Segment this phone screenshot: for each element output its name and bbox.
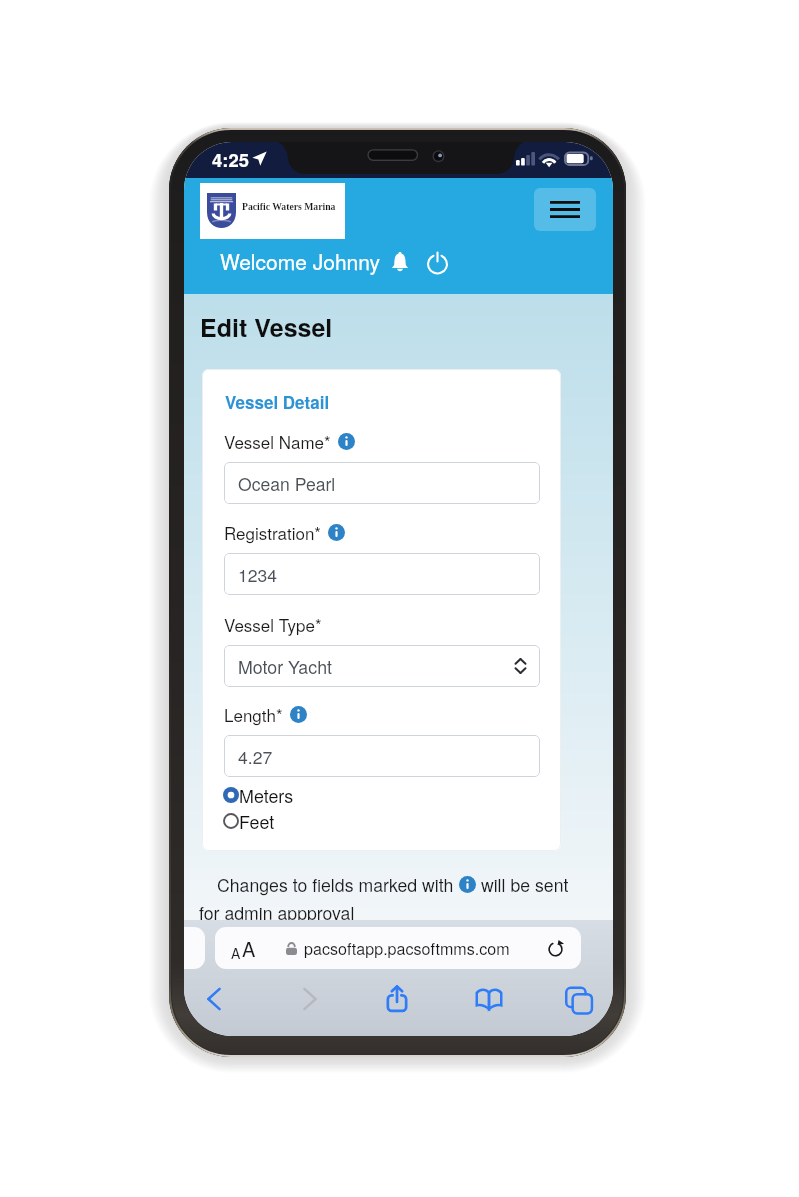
button[interactable]: Bookmarks — [470, 980, 508, 1018]
staticText: Meters — [239, 782, 294, 808]
staticText: Length* — [224, 702, 283, 726]
staticText: 4.27 — [238, 744, 273, 769]
staticText: Registration* — [224, 520, 321, 544]
staticText: A — [231, 943, 241, 963]
staticText: Edit Vessel — [200, 309, 333, 345]
button[interactable]: Motor Yacht — [224, 645, 540, 687]
staticText: Welcome Johnny — [220, 246, 380, 276]
button[interactable]: Share — [378, 980, 416, 1018]
staticText: will be sent — [476, 872, 569, 897]
staticText: Ocean Pearl — [238, 471, 336, 496]
button[interactable]: Notifications — [387, 249, 413, 275]
button[interactable]: Meters — [223, 782, 294, 808]
button[interactable]: Open navigation menu — [534, 188, 596, 231]
staticText: for admin appproval — [199, 900, 355, 925]
staticText: Pacific Waters Marina — [242, 201, 336, 212]
staticText: Vessel Type* — [224, 612, 322, 636]
button[interactable]: Log out — [424, 249, 450, 275]
staticText: 1234 — [238, 562, 278, 587]
staticText: Changes to fields marked with — [217, 872, 459, 897]
button[interactable]: A — [215, 927, 581, 969]
button[interactable]: 4.27 — [224, 735, 540, 777]
button[interactable]: 1234 — [224, 553, 540, 595]
staticText: Vessel Name* — [224, 429, 331, 453]
staticText: Vessel Detail — [225, 390, 330, 414]
button[interactable]: Pacific Waters Marina — [200, 183, 345, 239]
staticText: 4:25 — [212, 146, 250, 172]
staticText: Feet — [239, 808, 275, 834]
button[interactable]: Ocean Pearl — [224, 462, 540, 504]
staticText: A — [242, 934, 256, 963]
button[interactable]: Tabs — [559, 980, 597, 1018]
button[interactable]: Forward — [291, 980, 329, 1018]
staticText: pacsoftapp.pacsoftmms.com — [304, 937, 510, 960]
button[interactable]: Feet — [223, 808, 275, 834]
button[interactable]: Back — [195, 980, 233, 1018]
staticText: Motor Yacht — [238, 654, 332, 679]
